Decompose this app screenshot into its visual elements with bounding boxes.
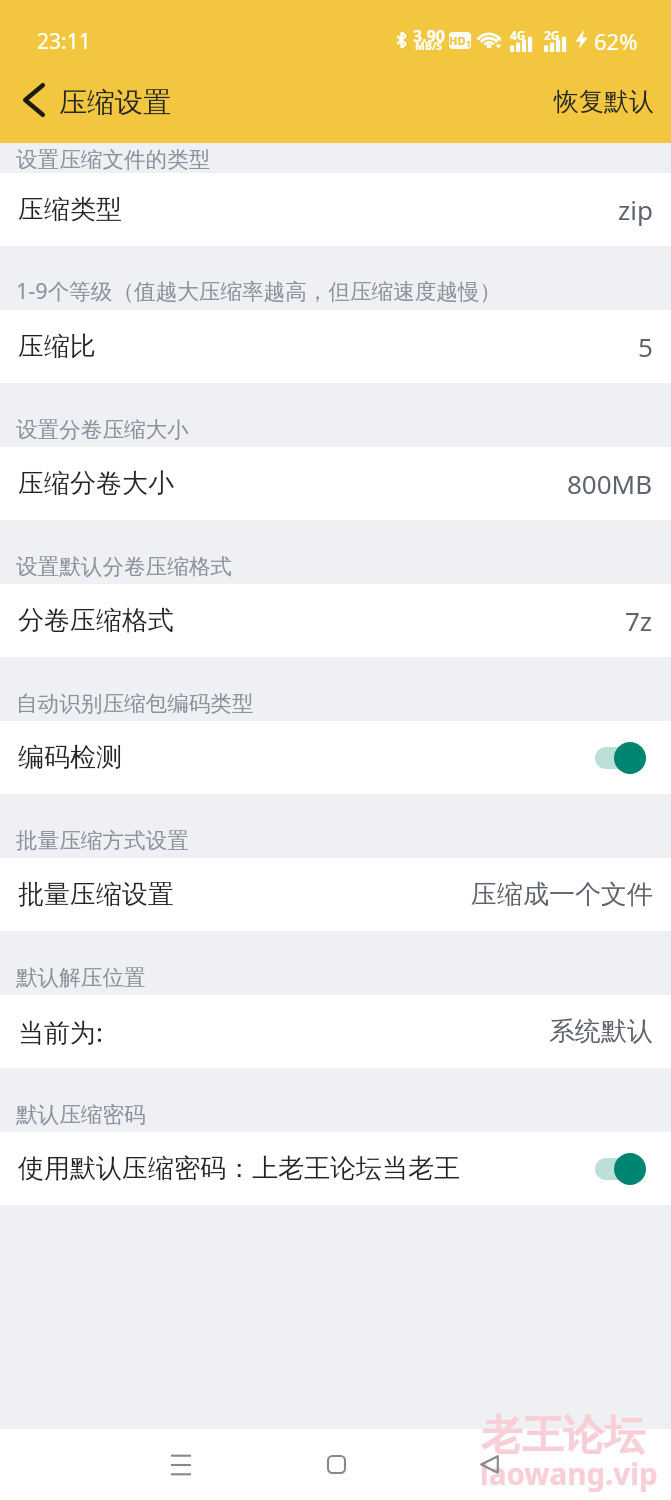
staticText: 23:11 — [37, 27, 91, 56]
staticText: 设置默认分卷压缩格式 — [16, 553, 232, 580]
staticText: HD — [449, 33, 466, 48]
staticText: 压缩设置 — [59, 85, 171, 120]
staticText: 恢复默认 — [554, 86, 654, 117]
staticText: 批量压缩设置 — [18, 878, 174, 911]
button[interactable]: Home — [300, 1429, 372, 1500]
button[interactable]: 当前为: — [0, 995, 671, 1068]
staticText: 压缩类型 — [18, 193, 122, 226]
button[interactable]: 使用默认压缩密码：上老王论坛当老王 — [0, 1132, 671, 1205]
button[interactable]: 压缩类型 — [0, 173, 671, 246]
staticText: 2G — [544, 27, 560, 43]
staticText: 3.90 — [413, 25, 445, 47]
staticText: 设置压缩文件的类型 — [16, 146, 211, 173]
staticText: 批量压缩方式设置 — [16, 827, 189, 854]
staticText: 编码检测 — [18, 741, 122, 774]
staticText: 1-9个等级（值越大压缩率越高，但压缩速度越慢） — [16, 276, 502, 306]
staticText: 5 — [638, 329, 653, 364]
button[interactable]: Back — [5, 70, 60, 130]
staticText: 老王论坛 — [481, 1410, 645, 1462]
staticText: 压缩比 — [18, 330, 96, 363]
staticText: 设置分卷压缩大小 — [16, 416, 189, 443]
button[interactable]: 批量压缩设置 — [0, 858, 671, 931]
button[interactable]: 编码检测 — [0, 721, 671, 794]
staticText: 压缩成一个文件 — [471, 878, 653, 911]
staticText: 默认压缩密码 — [16, 1101, 146, 1128]
button[interactable]: 恢复默认 — [537, 80, 671, 123]
staticText: 使用默认压缩密码：上老王论坛当老王 — [18, 1152, 460, 1185]
button[interactable]: Recent apps — [145, 1429, 217, 1500]
staticText: 62% — [594, 26, 638, 56]
staticText: 压缩分卷大小 — [18, 467, 174, 500]
staticText: laowang.vip — [480, 1453, 658, 1493]
staticText: 1 — [466, 38, 471, 49]
staticText: 当前为: — [18, 1014, 103, 1050]
staticText: 系统默认 — [549, 1015, 653, 1048]
staticText: 自动识别压缩包编码类型 — [16, 690, 254, 717]
staticText: 4G — [510, 27, 526, 43]
button[interactable]: 压缩比 — [0, 310, 671, 383]
staticText: 7z — [625, 603, 653, 638]
staticText: zip — [618, 192, 653, 227]
button[interactable]: 压缩分卷大小 — [0, 447, 671, 520]
button[interactable]: Back — [453, 1429, 525, 1500]
button[interactable]: 分卷压缩格式 — [0, 584, 671, 657]
staticText: 默认解压位置 — [16, 964, 146, 991]
staticText: 分卷压缩格式 — [18, 604, 174, 637]
staticText: MB/S — [415, 39, 443, 53]
staticText: 800MB — [567, 466, 653, 501]
